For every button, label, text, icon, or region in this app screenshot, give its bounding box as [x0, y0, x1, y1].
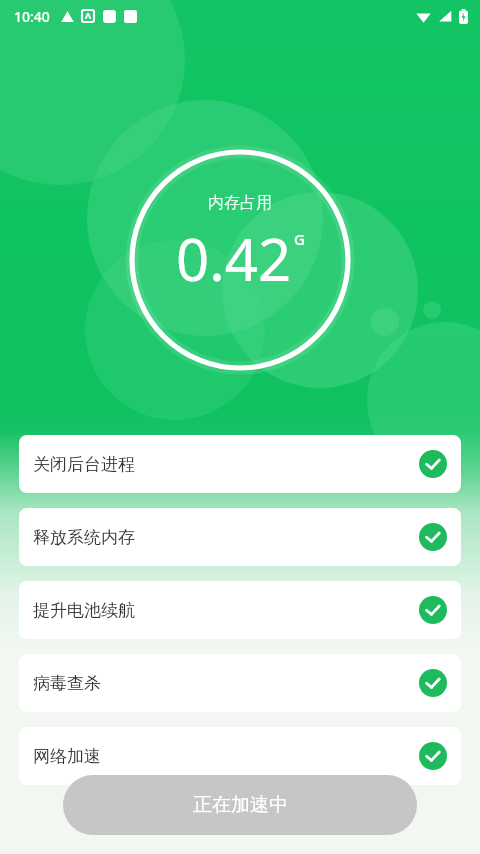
staticText: 病毒查杀	[33, 673, 101, 694]
staticText: 10:40	[14, 7, 50, 26]
other: Completed	[419, 596, 447, 624]
other: Completed	[419, 450, 447, 478]
other: Completed	[419, 523, 447, 551]
button[interactable]: 正在加速中	[63, 775, 417, 835]
button[interactable]: 网络加速	[19, 727, 461, 785]
staticText: 0.42	[176, 219, 292, 298]
staticText: 网络加速	[33, 746, 101, 767]
button[interactable]: 关闭后台进程	[19, 435, 461, 493]
button[interactable]: 释放系统内存	[19, 508, 461, 566]
staticText: 关闭后台进程	[33, 454, 135, 475]
staticText: 释放系统内存	[33, 527, 135, 548]
button[interactable]: 提升电池续航	[19, 581, 461, 639]
button[interactable]: 病毒查杀	[19, 654, 461, 712]
other: Completed	[419, 742, 447, 770]
staticText: 正在加速中	[193, 793, 288, 817]
staticText: 内存占用	[208, 193, 272, 213]
other: Completed	[419, 669, 447, 697]
staticText: 提升电池续航	[33, 600, 135, 621]
staticText: G	[294, 229, 305, 249]
